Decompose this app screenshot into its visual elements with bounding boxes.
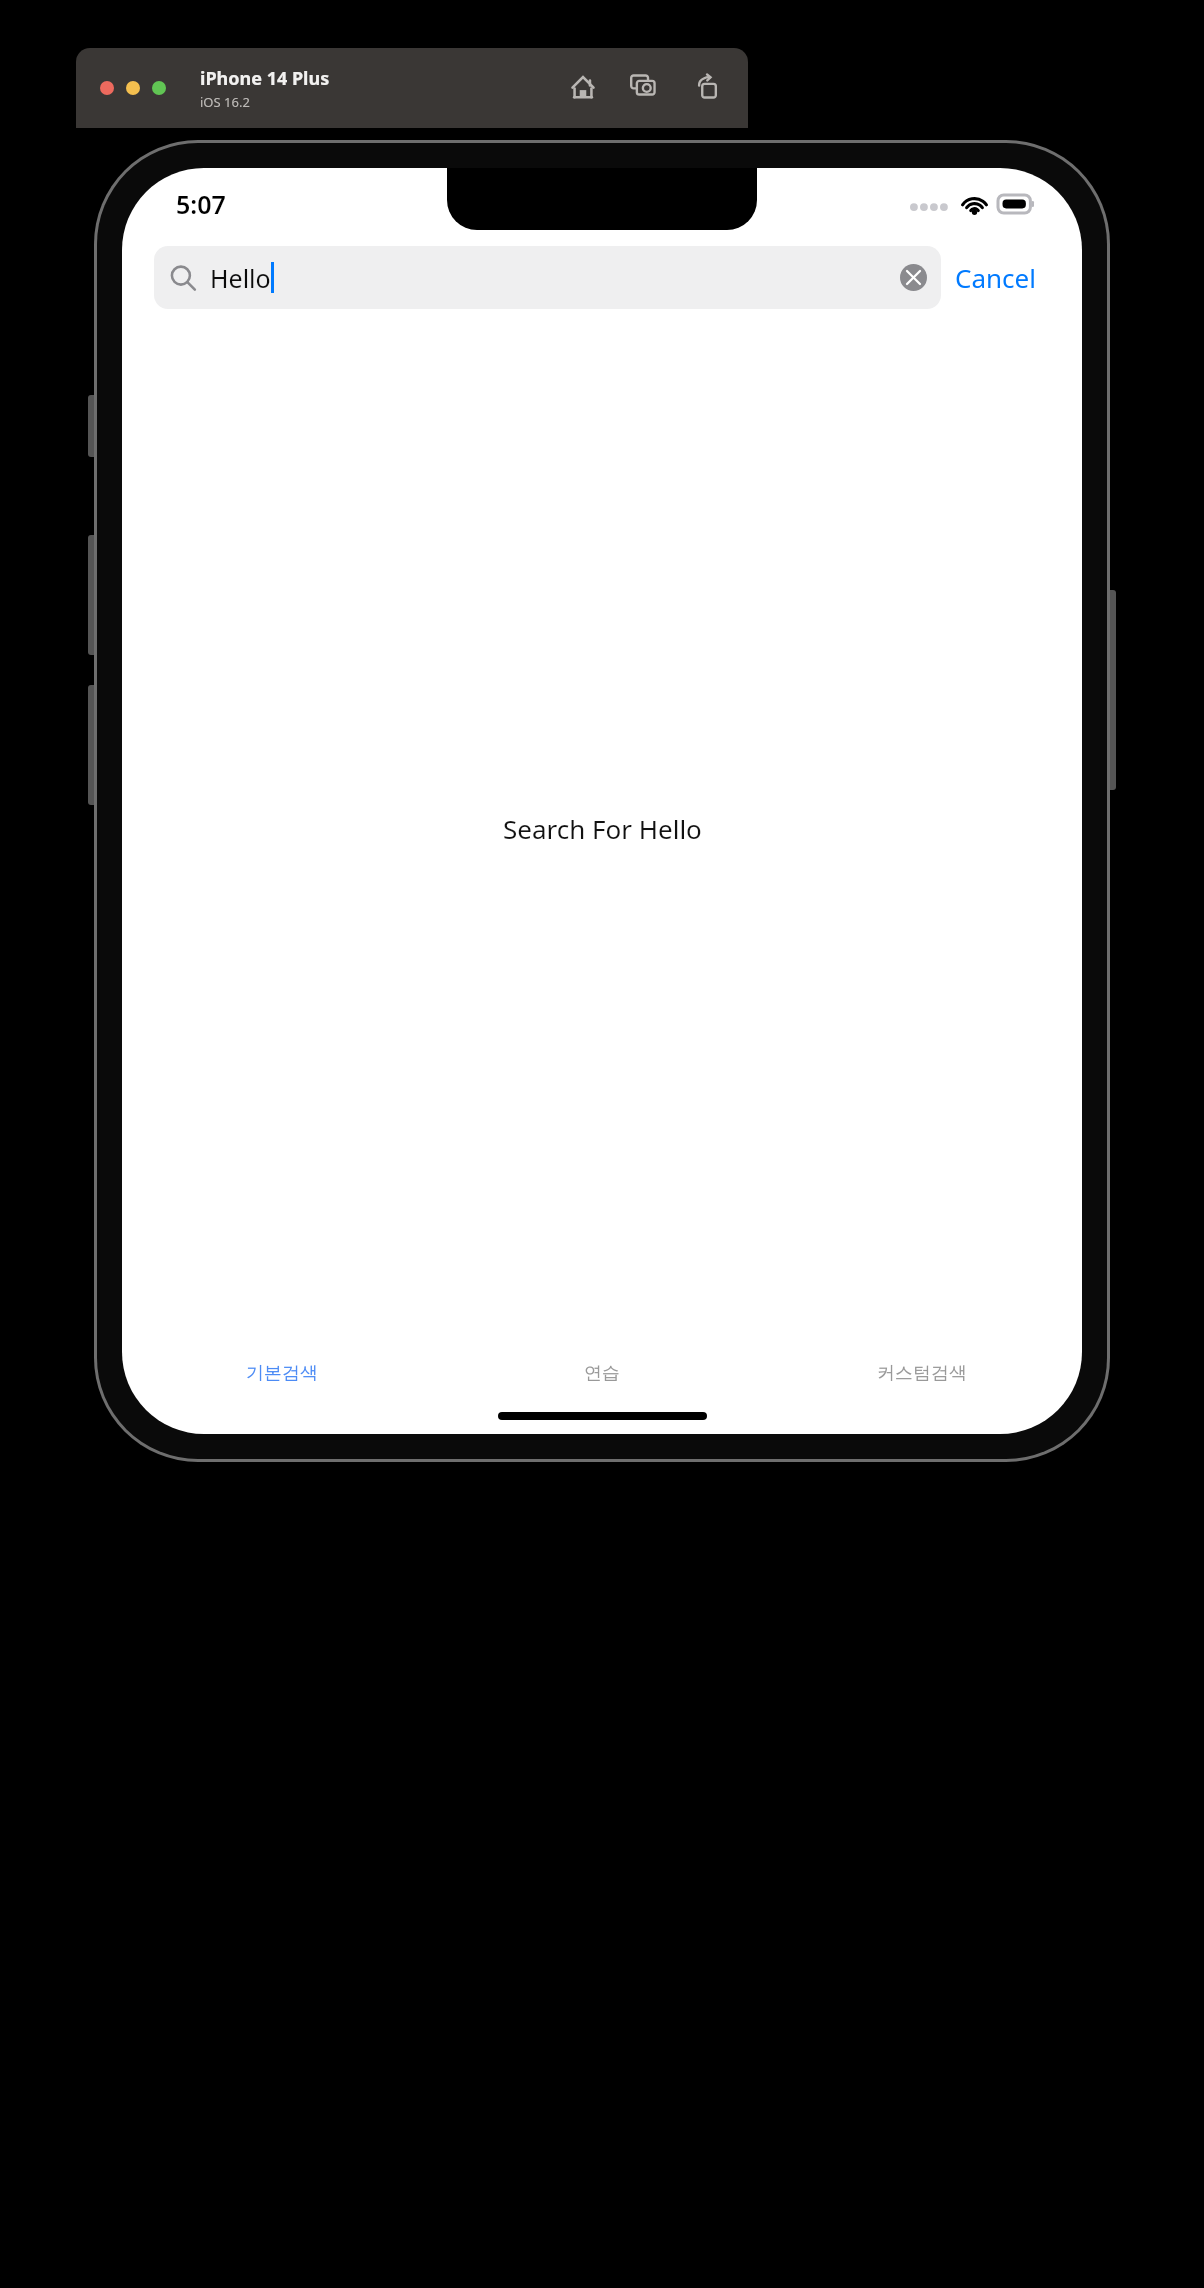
button[interactable]: Hello (154, 246, 941, 309)
button[interactable]: Maximize (152, 81, 166, 95)
staticText: 기본검색 (246, 1362, 318, 1385)
staticText: Search For Hello (503, 811, 702, 846)
button[interactable]: Clear text (900, 264, 927, 291)
button[interactable]: 커스텀검색 (762, 1348, 1082, 1398)
staticText: Cancel (955, 260, 1036, 295)
staticText: iOS 16.2 (200, 93, 250, 111)
button[interactable]: Screenshot (628, 71, 662, 105)
button[interactable]: Close (100, 81, 114, 95)
staticText: 연습 (584, 1362, 620, 1385)
staticText: 커스텀검색 (877, 1362, 967, 1385)
button[interactable]: 기본검색 (122, 1348, 442, 1398)
button[interactable]: Home (566, 71, 600, 105)
staticText: 5:07 (176, 187, 226, 221)
staticText: Hello (210, 261, 271, 295)
button[interactable]: Minimize (126, 81, 140, 95)
button[interactable]: 연습 (442, 1348, 762, 1398)
button[interactable]: Cancel (941, 252, 1050, 303)
staticText: iPhone 14 Plus (200, 66, 330, 91)
button[interactable]: Share (690, 71, 724, 105)
